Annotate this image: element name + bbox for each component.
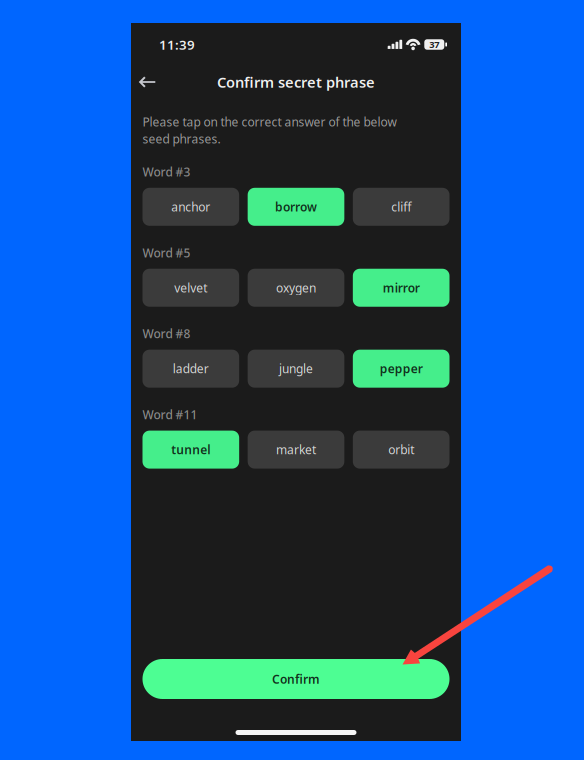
button[interactable]: velvet <box>142 269 239 307</box>
staticText: Word #11 <box>142 407 197 423</box>
staticText: mirror <box>383 280 420 296</box>
button[interactable]: market <box>248 431 344 469</box>
button[interactable]: ladder <box>142 350 239 388</box>
button[interactable]: orbit <box>353 431 449 469</box>
staticText: borrow <box>275 199 317 215</box>
staticText: Word #5 <box>142 245 190 261</box>
button[interactable]: mirror <box>353 269 449 307</box>
button[interactable]: anchor <box>142 188 239 226</box>
staticText: tunnel <box>171 442 210 457</box>
button[interactable]: cliff <box>353 188 449 226</box>
staticText: Please tap on the correct answer of the … <box>142 114 396 130</box>
staticText: cliff <box>391 199 411 215</box>
button[interactable]: jungle <box>248 350 344 388</box>
staticText: Confirm secret phrase <box>217 72 375 92</box>
staticText: Word #8 <box>142 326 190 342</box>
staticText: pepper <box>380 361 423 377</box>
button[interactable]: Back <box>132 67 162 97</box>
staticText: Word #3 <box>142 164 190 180</box>
staticText: oxygen <box>276 280 316 296</box>
button[interactable]: pepper <box>353 350 449 388</box>
button[interactable]: tunnel <box>142 431 239 469</box>
staticText: velvet <box>174 280 207 296</box>
staticText: Confirm <box>272 671 320 687</box>
button[interactable]: Confirm <box>142 659 449 699</box>
button[interactable]: borrow <box>248 188 344 226</box>
staticText: ladder <box>173 361 209 377</box>
staticText: 11:39 <box>159 36 195 53</box>
staticText: 37 <box>429 38 439 51</box>
staticText: seed phrases. <box>142 131 220 147</box>
staticText: jungle <box>279 361 313 377</box>
staticText: anchor <box>171 199 210 215</box>
button[interactable]: oxygen <box>248 269 344 307</box>
staticText: market <box>276 442 316 457</box>
staticText: orbit <box>388 442 414 457</box>
